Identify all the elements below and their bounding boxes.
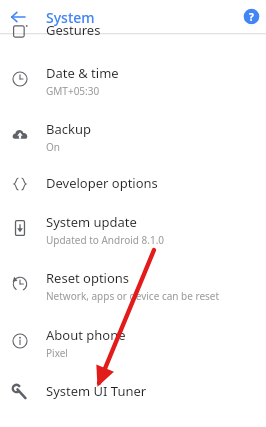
staticText: Backup bbox=[46, 120, 91, 138]
button[interactable]: Backup bbox=[0, 120, 266, 156]
staticText: Reset options bbox=[46, 269, 130, 287]
staticText: GMT+05:30 bbox=[46, 84, 100, 98]
staticText: About phone bbox=[46, 326, 126, 344]
staticText: Pixel bbox=[46, 346, 68, 360]
staticText: ? bbox=[249, 10, 254, 24]
button[interactable]: System UI Tuner bbox=[0, 382, 266, 406]
button[interactable]: Help bbox=[243, 8, 260, 25]
staticText: Gestures bbox=[46, 21, 101, 39]
staticText: On bbox=[46, 140, 60, 154]
button[interactable]: About phone bbox=[0, 326, 266, 362]
button[interactable]: Date & time bbox=[0, 64, 266, 100]
button[interactable]: Reset options bbox=[0, 269, 266, 305]
button[interactable]: System update bbox=[0, 213, 266, 249]
button[interactable]: Back bbox=[6, 5, 29, 28]
staticText: Updated to Android 8.1.0 bbox=[46, 233, 165, 247]
staticText: Network, apps or device can be reset bbox=[46, 289, 220, 303]
button[interactable]: Developer options bbox=[0, 174, 266, 198]
staticText: Developer options bbox=[46, 174, 158, 192]
staticText: System UI Tuner bbox=[46, 382, 147, 400]
staticText: System bbox=[46, 8, 95, 27]
button[interactable]: Gestures bbox=[0, 21, 266, 45]
staticText: System update bbox=[46, 213, 137, 231]
staticText: Date & time bbox=[46, 64, 119, 82]
